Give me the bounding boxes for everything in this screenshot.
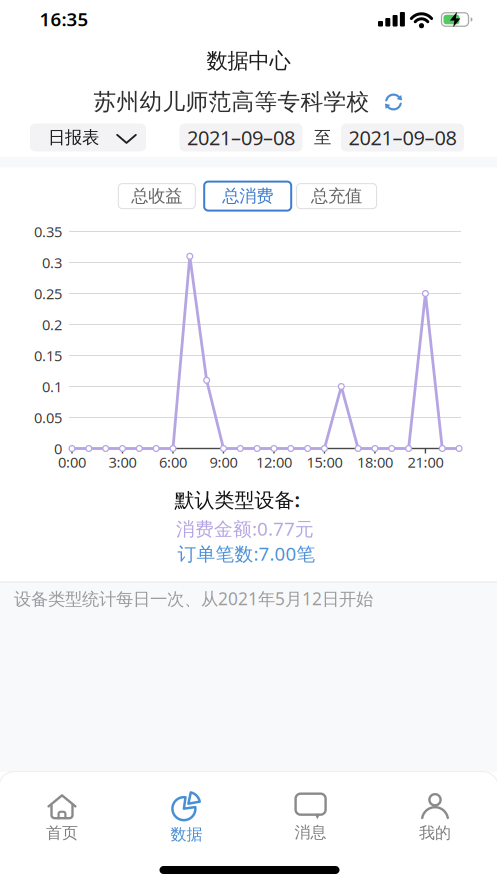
staticText: 0: [54, 439, 62, 458]
staticText: 3:00: [108, 452, 136, 472]
staticText: 日报表: [48, 127, 99, 148]
staticText: 订单笔数:7.00笔: [177, 541, 315, 566]
staticText: 0.05: [34, 408, 62, 427]
staticText: 设备类型统计每日一次、从2021年5月12日开始: [14, 587, 373, 610]
button[interactable]: 2021–09–08: [341, 123, 464, 151]
staticText: 6:00: [159, 452, 187, 472]
staticText: 苏州幼儿师范高等专科学校: [93, 88, 369, 116]
staticText: 数据: [170, 825, 202, 844]
staticText: 我的: [419, 823, 451, 843]
staticText: 0.15: [34, 346, 62, 365]
staticText: 总消费: [222, 185, 273, 207]
staticText: 至: [314, 127, 331, 148]
staticText: 0.1: [42, 377, 62, 396]
button[interactable]: 2021–09–08: [179, 123, 302, 151]
staticText: 18:00: [357, 452, 393, 472]
staticText: 15:00: [306, 452, 342, 472]
staticText: 消息: [295, 823, 327, 842]
staticText: 2021–09–08: [348, 124, 456, 151]
staticText: 总收益: [131, 185, 182, 207]
button[interactable]: 总收益: [118, 184, 195, 209]
staticText: 16:35: [39, 7, 88, 31]
staticText: 首页: [46, 823, 78, 843]
button[interactable]: 首页: [7, 787, 117, 849]
button[interactable]: 消息: [256, 787, 366, 849]
staticText: 21:00: [407, 452, 443, 472]
button[interactable]: 我的: [380, 787, 490, 849]
staticText: 0.35: [34, 222, 62, 241]
staticText: 2021–09–08: [187, 124, 295, 151]
staticText: 总充值: [311, 185, 362, 207]
button[interactable]: 日报表: [30, 123, 146, 151]
button[interactable]: 数据: [131, 787, 241, 849]
staticText: 消费金额:0.77元: [176, 516, 314, 541]
staticText: 0:00: [58, 452, 86, 472]
staticText: 默认类型设备:: [174, 486, 300, 513]
button[interactable]: 总消费: [204, 182, 291, 211]
button[interactable]: 刷新: [383, 92, 403, 112]
staticText: 12:00: [256, 452, 292, 472]
staticText: 0.2: [42, 315, 62, 334]
button[interactable]: 总充值: [297, 184, 377, 209]
staticText: 数据中心: [206, 48, 290, 74]
staticText: 0.25: [34, 284, 62, 303]
staticText: 0.3: [42, 253, 62, 272]
staticText: 9:00: [209, 452, 237, 472]
